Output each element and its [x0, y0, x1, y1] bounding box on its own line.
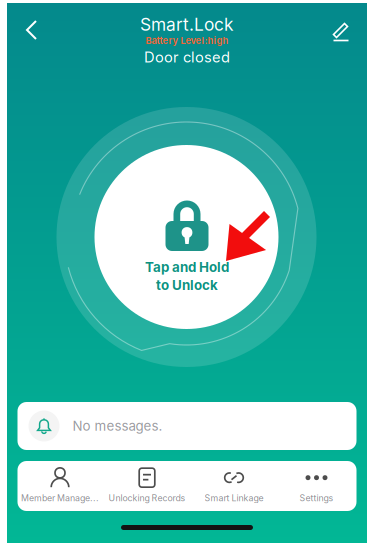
button[interactable]: Back — [13, 9, 53, 51]
staticText: Door closed — [144, 48, 230, 66]
button[interactable]: Member Manage... — [17, 461, 102, 511]
staticText: Tap and Hold — [145, 259, 229, 275]
button[interactable]: No messages. — [17, 402, 356, 450]
staticText: Member Manage... — [21, 493, 99, 503]
button[interactable]: Settings — [276, 461, 356, 511]
staticText: No messages. — [72, 418, 162, 434]
staticText: Battery Level:high — [145, 35, 228, 46]
button[interactable]: Edit — [321, 9, 361, 51]
staticText: Smart.Lock — [140, 14, 234, 35]
staticText: Unlocking Records — [108, 493, 185, 503]
staticText: Smart Linkage — [204, 493, 263, 503]
staticText: Settings — [299, 493, 333, 503]
button[interactable]: Unlocking Records — [102, 461, 191, 511]
button[interactable]: Smart Linkage — [191, 461, 276, 511]
staticText: to Unlock — [156, 277, 218, 293]
